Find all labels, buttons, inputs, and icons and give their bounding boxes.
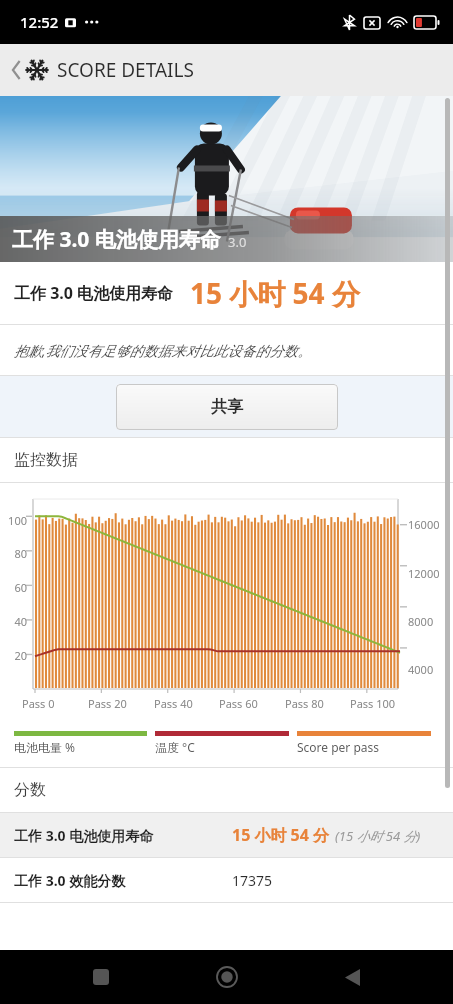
staticText: 共享 [211, 397, 243, 417]
staticText: 4000 [408, 662, 434, 677]
staticText: 100 [5, 513, 27, 528]
staticText: 20 [5, 648, 27, 663]
staticText: Score per pass [297, 739, 380, 755]
staticText: 3.0 [228, 233, 247, 251]
button[interactable]: Back [8, 53, 198, 87]
staticText: Pass 0 [22, 696, 55, 711]
staticText: 12000 [408, 566, 440, 581]
button[interactable]: Home [203, 953, 251, 1001]
staticText: 工作 3.0 电池使用寿命 [12, 225, 221, 254]
staticText: SCORE DETAILS [57, 57, 194, 83]
staticText: Pass 80 [285, 696, 324, 711]
staticText: 12:52 [20, 12, 59, 32]
staticText: 15 小时 54 分 [232, 824, 330, 846]
staticText: (15 小时 54 分) [335, 827, 421, 845]
staticText: 电池电量 % [14, 739, 76, 755]
staticText: Pass 100 [350, 696, 396, 711]
staticText: 分数 [14, 780, 46, 800]
staticText: 60 [5, 580, 27, 595]
staticText: Pass 40 [154, 696, 193, 711]
staticText: Pass 60 [219, 696, 258, 711]
button[interactable]: 共享 [116, 384, 338, 430]
staticText: 工作 3.0 电池使用寿命 [14, 282, 174, 304]
staticText: 17375 [232, 871, 273, 890]
staticText: 监控数据 [14, 450, 78, 470]
staticText: 8000 [408, 614, 434, 629]
staticText: 抱歉,我们没有足够的数据来对比此设备的分数。 [14, 341, 312, 360]
button[interactable]: Recent apps [77, 953, 125, 1001]
staticText: Pass 20 [88, 696, 127, 711]
staticText: 16000 [408, 517, 440, 532]
staticText: 40 [5, 614, 27, 629]
button[interactable]: Back [328, 953, 376, 1001]
staticText: 温度 °C [155, 739, 195, 755]
staticText: 80 [5, 546, 27, 561]
staticText: 15 小时 54 分 [190, 274, 360, 312]
staticText: 工作 3.0 效能分数 [14, 871, 126, 890]
staticText: 工作 3.0 电池使用寿命 [14, 826, 154, 845]
